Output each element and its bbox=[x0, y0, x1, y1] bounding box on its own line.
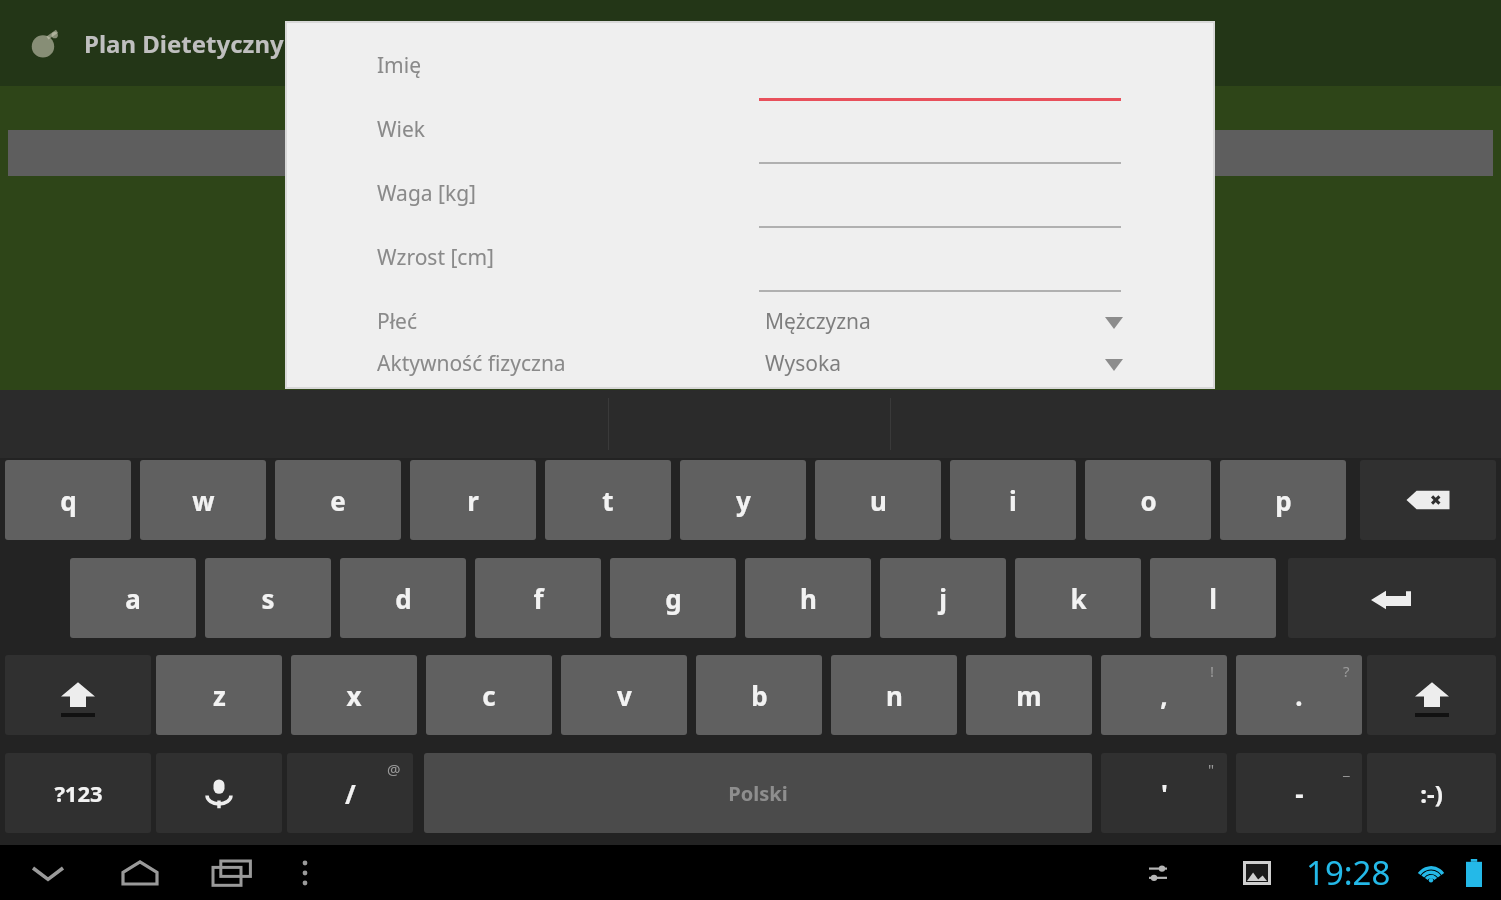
button[interactable]: . bbox=[1236, 655, 1362, 735]
staticText: ' bbox=[1161, 776, 1168, 811]
button[interactable]: f bbox=[475, 558, 601, 638]
button[interactable]: Quick settings bbox=[1133, 845, 1183, 900]
staticText: d bbox=[395, 581, 412, 616]
staticText: Wysoka bbox=[765, 349, 841, 378]
staticText: b bbox=[751, 678, 768, 713]
staticText: Polski bbox=[728, 780, 788, 807]
button[interactable]: d bbox=[340, 558, 466, 638]
button[interactable]: Recent apps bbox=[198, 845, 266, 900]
button[interactable]: 19:28 bbox=[1288, 845, 1408, 900]
button[interactable] bbox=[287, 235, 1213, 291]
button[interactable]: s bbox=[205, 558, 331, 638]
staticText: ? bbox=[1343, 661, 1350, 681]
staticText: z bbox=[213, 678, 226, 713]
button[interactable]: j bbox=[880, 558, 1006, 638]
button[interactable]: Battery bbox=[1452, 845, 1496, 900]
button[interactable]: m bbox=[966, 655, 1092, 735]
button[interactable]: r bbox=[410, 460, 536, 540]
staticText: g bbox=[665, 581, 682, 616]
staticText: _ bbox=[1343, 759, 1350, 779]
staticText: i bbox=[1009, 483, 1017, 518]
staticText: t bbox=[602, 483, 614, 518]
staticText: . bbox=[1295, 678, 1303, 713]
button[interactable]: l bbox=[1150, 558, 1276, 638]
button[interactable]: Enter bbox=[1288, 558, 1496, 638]
button[interactable]: ' bbox=[1101, 753, 1227, 833]
staticText: Aktywność fizyczna bbox=[377, 349, 566, 378]
staticText: @ bbox=[387, 759, 401, 779]
button[interactable]: g bbox=[610, 558, 736, 638]
button[interactable] bbox=[8, 130, 1493, 176]
staticText: n bbox=[886, 678, 903, 713]
staticText: x bbox=[346, 678, 362, 713]
staticText: f bbox=[533, 581, 544, 616]
staticText: m bbox=[1016, 678, 1042, 713]
staticText: ! bbox=[1210, 661, 1215, 681]
button[interactable]: e bbox=[275, 460, 401, 540]
staticText: 19:28 bbox=[1306, 850, 1391, 895]
button[interactable] bbox=[287, 107, 1213, 163]
staticText: Wzrost [cm] bbox=[377, 243, 494, 272]
button[interactable]: / bbox=[287, 753, 413, 833]
button[interactable]: , bbox=[1101, 655, 1227, 735]
button[interactable]: Voice input bbox=[156, 753, 282, 833]
staticText: u bbox=[870, 483, 887, 518]
button[interactable]: w bbox=[140, 460, 266, 540]
button[interactable]: Backspace bbox=[1360, 460, 1496, 540]
staticText: l bbox=[1209, 581, 1217, 616]
staticText: ?123 bbox=[54, 778, 103, 808]
button[interactable]: u bbox=[815, 460, 941, 540]
button[interactable]: i bbox=[950, 460, 1076, 540]
button[interactable]: k bbox=[1015, 558, 1141, 638]
button[interactable]: Płeć bbox=[287, 301, 1213, 343]
button[interactable]: Screenshot bbox=[1232, 845, 1282, 900]
staticText: Mężczyzna bbox=[765, 307, 871, 336]
button[interactable] bbox=[287, 171, 1213, 227]
button[interactable] bbox=[287, 43, 1213, 99]
staticText: v bbox=[617, 678, 632, 713]
staticText: y bbox=[736, 483, 751, 518]
staticText: Imię bbox=[377, 51, 422, 80]
button[interactable]: :-) bbox=[1367, 753, 1496, 833]
button[interactable]: q bbox=[5, 460, 131, 540]
staticText: p bbox=[1275, 483, 1292, 518]
staticText: r bbox=[467, 483, 479, 518]
button[interactable]: c bbox=[426, 655, 552, 735]
button[interactable]: a bbox=[70, 558, 196, 638]
staticText: j bbox=[939, 581, 947, 616]
button[interactable]: Home bbox=[106, 845, 174, 900]
staticText: o bbox=[1140, 483, 1157, 518]
staticText: a bbox=[125, 581, 141, 616]
button[interactable]: y bbox=[680, 460, 806, 540]
button[interactable]: Shift bbox=[1367, 655, 1496, 735]
staticText: Płeć bbox=[377, 307, 418, 336]
staticText: k bbox=[1070, 581, 1087, 616]
button[interactable]: h bbox=[745, 558, 871, 638]
button[interactable]: t bbox=[545, 460, 671, 540]
staticText: c bbox=[482, 678, 496, 713]
button[interactable]: Polski bbox=[424, 753, 1092, 833]
button[interactable]: ?123 bbox=[5, 753, 151, 833]
button[interactable]: - bbox=[1236, 753, 1362, 833]
button[interactable]: p bbox=[1220, 460, 1346, 540]
staticText: w bbox=[192, 483, 215, 518]
button[interactable]: o bbox=[1085, 460, 1211, 540]
staticText: s bbox=[261, 581, 275, 616]
button[interactable]: x bbox=[291, 655, 417, 735]
button[interactable]: More options bbox=[278, 845, 332, 900]
staticText: Waga [kg] bbox=[377, 179, 476, 208]
staticText: e bbox=[330, 483, 346, 518]
button[interactable]: v bbox=[561, 655, 687, 735]
button[interactable]: Aktywność fizyczna bbox=[287, 343, 1213, 385]
button[interactable]: b bbox=[696, 655, 822, 735]
button[interactable]: Hide keyboard bbox=[14, 845, 82, 900]
staticText: q bbox=[60, 483, 77, 518]
staticText: / bbox=[345, 776, 356, 811]
button[interactable]: n bbox=[831, 655, 957, 735]
staticText: :-) bbox=[1420, 777, 1443, 810]
staticText: - bbox=[1295, 776, 1304, 811]
staticText: , bbox=[1160, 678, 1168, 713]
button[interactable]: z bbox=[156, 655, 282, 735]
button[interactable]: Shift bbox=[5, 655, 151, 735]
button[interactable]: Wi-Fi bbox=[1408, 845, 1454, 900]
